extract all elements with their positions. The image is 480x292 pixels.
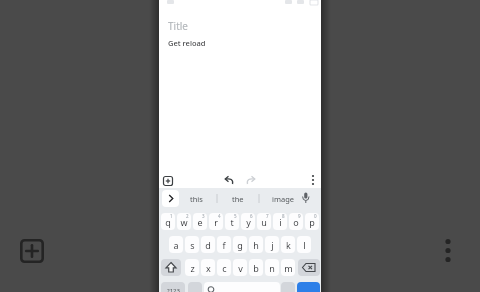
- button[interactable]: this: [176, 190, 216, 207]
- button[interactable]: Get reload: [168, 38, 206, 48]
- staticText: j: [271, 239, 274, 251]
- staticText: k: [286, 239, 291, 251]
- button[interactable]: [223, 174, 235, 186]
- button[interactable]: [298, 259, 320, 276]
- staticText: 1: [170, 213, 173, 219]
- button[interactable]: [162, 175, 174, 187]
- staticText: b: [253, 262, 259, 274]
- button[interactable]: ,: [188, 282, 202, 292]
- staticText: 4: [218, 213, 221, 219]
- button[interactable]: l: [297, 236, 311, 253]
- button[interactable]: r: [209, 213, 223, 230]
- staticText: f: [222, 239, 226, 251]
- button[interactable]: o: [289, 213, 303, 230]
- button[interactable]: [309, 174, 317, 186]
- staticText: p: [309, 216, 315, 228]
- staticText: o: [293, 216, 299, 228]
- staticText: x: [206, 262, 211, 274]
- staticText: r: [214, 216, 218, 228]
- button[interactable]: q: [161, 213, 175, 230]
- staticText: h: [253, 239, 259, 251]
- staticText: 3: [202, 213, 205, 219]
- button[interactable]: j: [265, 236, 279, 253]
- button[interactable]: f: [217, 236, 231, 253]
- staticText: y: [246, 216, 251, 228]
- button[interactable]: m: [281, 259, 295, 276]
- staticText: z: [190, 262, 195, 274]
- button[interactable]: [162, 190, 179, 207]
- staticText: g: [237, 239, 243, 251]
- button[interactable]: .: [281, 282, 295, 292]
- staticText: this: [190, 194, 203, 204]
- staticText: 8: [282, 213, 285, 219]
- staticText: u: [261, 216, 267, 228]
- button[interactable]: z: [185, 259, 199, 276]
- staticText: 2: [186, 213, 189, 219]
- button[interactable]: h: [249, 236, 263, 253]
- staticText: 0: [314, 213, 317, 219]
- button[interactable]: g: [233, 236, 247, 253]
- button[interactable]: the: [218, 190, 258, 207]
- button[interactable]: u: [257, 213, 271, 230]
- staticText: v: [238, 262, 243, 274]
- staticText: q: [165, 216, 171, 228]
- button[interactable]: [20, 239, 44, 263]
- button[interactable]: e: [193, 213, 207, 230]
- staticText: t: [230, 216, 234, 228]
- staticText: ?123: [167, 287, 180, 292]
- button[interactable]: v: [233, 259, 247, 276]
- staticText: Title: [168, 19, 188, 33]
- staticText: the: [232, 194, 244, 204]
- button[interactable]: [297, 282, 320, 292]
- staticText: w: [180, 216, 188, 228]
- button[interactable]: i: [273, 213, 287, 230]
- button[interactable]: b: [249, 259, 263, 276]
- staticText: a: [173, 239, 179, 251]
- staticText: c: [222, 262, 227, 274]
- staticText: n: [269, 262, 275, 274]
- staticText: 5: [234, 213, 237, 219]
- button[interactable]: [440, 236, 456, 266]
- staticText: image: [272, 194, 294, 204]
- button[interactable]: p: [305, 213, 319, 230]
- staticText: e: [197, 216, 203, 228]
- button[interactable]: s: [185, 236, 199, 253]
- staticText: 7: [266, 213, 269, 219]
- button[interactable]: c: [217, 259, 231, 276]
- button[interactable]: n: [265, 259, 279, 276]
- staticText: l: [303, 239, 306, 251]
- button[interactable]: t: [225, 213, 239, 230]
- button[interactable]: ?123: [161, 282, 185, 292]
- staticText: m: [284, 262, 293, 274]
- button[interactable]: w: [177, 213, 191, 230]
- button[interactable]: k: [281, 236, 295, 253]
- button[interactable]: [161, 259, 181, 276]
- button[interactable]: y: [241, 213, 255, 230]
- staticText: i: [279, 216, 282, 228]
- button[interactable]: image: [263, 190, 303, 207]
- staticText: 9: [298, 213, 301, 219]
- button[interactable]: x: [201, 259, 215, 276]
- staticText: d: [205, 239, 211, 251]
- button[interactable]: [245, 174, 257, 186]
- button[interactable]: a: [169, 236, 183, 253]
- button[interactable]: [204, 282, 280, 292]
- button[interactable]: d: [201, 236, 215, 253]
- staticText: s: [190, 239, 195, 251]
- staticText: 6: [250, 213, 253, 219]
